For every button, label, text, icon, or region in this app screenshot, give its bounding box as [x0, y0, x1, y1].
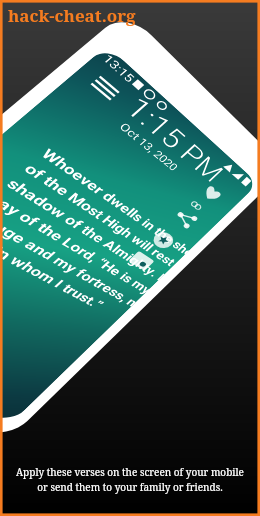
staticText: Apply these verses on the screen of your…: [14, 465, 246, 494]
staticText: hack-cheat.org: [8, 4, 136, 27]
